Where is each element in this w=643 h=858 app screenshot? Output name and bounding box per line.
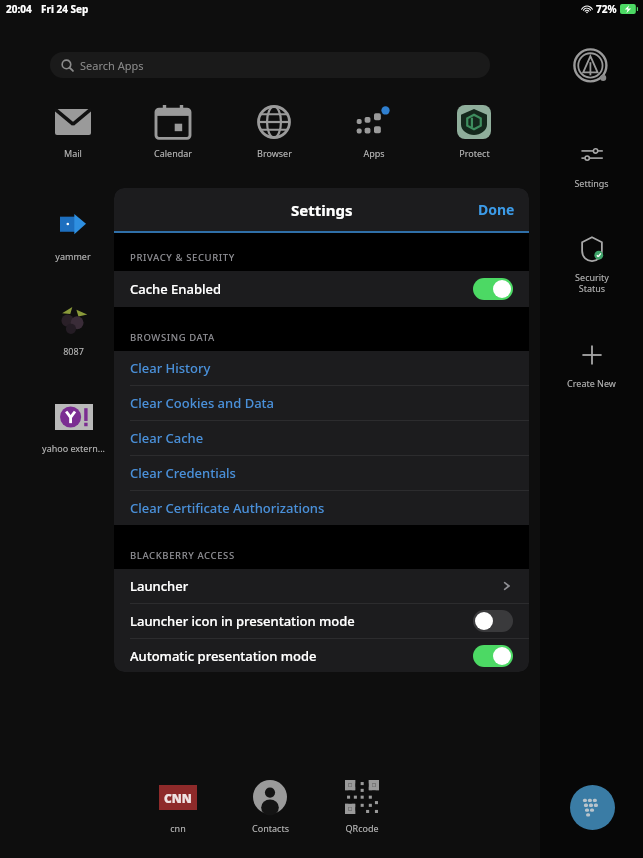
staticText: yahoo extern... <box>42 442 105 454</box>
button[interactable]: Launcher <box>114 569 529 603</box>
staticText: Search Apps <box>80 58 144 73</box>
button[interactable]: Settings <box>540 137 643 193</box>
button[interactable]: 8087 <box>33 301 113 357</box>
staticText: Fri 24 Sep <box>41 2 89 16</box>
button[interactable]: Protect <box>434 103 514 159</box>
button[interactable]: CNN <box>138 778 218 834</box>
staticText: Launcher <box>130 577 189 595</box>
button[interactable]: Clear Cache <box>114 421 529 455</box>
staticText: Settings <box>291 200 353 220</box>
button[interactable]: Create New <box>540 337 643 393</box>
button[interactable]: Calendar <box>133 103 213 159</box>
staticText: Launcher icon in presentation mode <box>130 612 355 630</box>
staticText: Mail <box>64 147 82 159</box>
button[interactable]: Search Apps <box>50 52 490 78</box>
staticText: Create New <box>567 377 616 389</box>
staticText: yammer <box>55 250 91 262</box>
button[interactable]: Launcher icon in presentation mode <box>114 604 529 638</box>
button[interactable]: Clear History <box>114 351 529 385</box>
staticText: 72% <box>596 2 617 16</box>
staticText: Clear Credentials <box>130 464 236 482</box>
button[interactable]: Contacts <box>230 778 310 834</box>
staticText: QRcode <box>345 822 379 834</box>
button[interactable]: BlackBerry Hub <box>570 785 615 830</box>
button[interactable]: Browser <box>234 103 314 159</box>
staticText: Security Status <box>575 271 609 295</box>
staticText: BROWSING DATA <box>130 331 215 344</box>
staticText: Automatic presentation mode <box>130 647 317 665</box>
staticText: Clear History <box>130 359 211 377</box>
staticText: cnn <box>170 822 186 834</box>
staticText: Settings <box>574 177 609 189</box>
button[interactable]: Clear Credentials <box>114 456 529 490</box>
staticText: BLACKBERRY ACCESS <box>130 549 235 562</box>
staticText: Apps <box>363 147 385 159</box>
button[interactable]: Clear Certificate Authorizations <box>114 491 529 525</box>
staticText: Done <box>478 200 515 219</box>
button[interactable]: QRcode <box>322 778 402 834</box>
staticText: Cache Enabled <box>130 280 221 298</box>
staticText: Clear Cache <box>130 429 204 447</box>
button[interactable]: Cache Enabled <box>114 271 529 307</box>
staticText: 8087 <box>63 345 84 357</box>
staticText: Contacts <box>252 822 289 834</box>
button[interactable]: Security Status <box>540 231 643 299</box>
staticText: CNN <box>164 790 192 806</box>
staticText: Browser <box>257 147 292 159</box>
button[interactable]: Done <box>464 192 529 227</box>
button[interactable]: Apps <box>334 103 414 159</box>
staticText: PRIVACY & SECURITY <box>130 251 235 264</box>
staticText: Clear Cookies and Data <box>130 394 275 412</box>
button[interactable]: Account <box>570 45 614 89</box>
staticText: Clear Certificate Authorizations <box>130 499 325 517</box>
button[interactable]: Mail <box>33 103 113 159</box>
staticText: Protect <box>459 147 490 159</box>
button[interactable]: Automatic presentation mode <box>114 639 529 672</box>
button[interactable]: yahoo extern... <box>33 398 113 454</box>
staticText: Calendar <box>154 147 192 159</box>
button[interactable]: yammer <box>33 206 113 262</box>
button[interactable]: Clear Cookies and Data <box>114 386 529 420</box>
staticText: 20:04 <box>6 2 32 16</box>
